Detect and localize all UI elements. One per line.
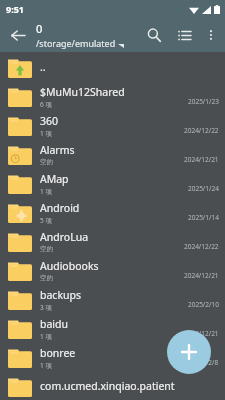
staticText: 空的 [40,245,53,253]
staticText: com.ucmed.xinqiao.patient [40,379,175,393]
button[interactable]: Search [139,18,169,52]
button[interactable]: 0 [36,21,139,49]
staticText: 2024/12/22 [184,126,219,135]
button[interactable]: $MuMu12Shared [0,82,225,111]
staticText: 3 项 [40,303,52,312]
staticText: AMap [40,172,69,186]
button[interactable]: 360 [0,111,225,140]
staticText: 1 项 [40,129,52,138]
staticText: Alarms [40,143,75,157]
staticText: 1 项 [40,361,52,370]
staticText: Android [40,201,80,215]
staticText: 空的 [40,158,53,166]
button[interactable]: AndroLua [0,227,225,256]
staticText: 2024/12/22 [184,242,219,251]
button[interactable]: Audiobooks [0,256,225,285]
staticText: 6 项 [40,100,52,109]
staticText: bonree [40,346,76,360]
button[interactable]: backups [0,285,225,314]
staticText: 2025/1/24 [188,184,219,193]
staticText: 2025/2/8 [191,358,219,367]
staticText: 5 项 [40,216,52,225]
staticText: 360 [40,114,59,128]
staticText: 2024/12/21 [184,271,219,280]
staticText: .. [40,60,46,74]
staticText: Audiobooks [40,259,99,273]
staticText: AndroLua [40,230,89,244]
staticText: 9:51 [6,3,24,15]
button[interactable]: Android [0,198,225,227]
staticText: backups [40,288,81,302]
staticText: baidu [40,317,69,331]
staticText: /storage/emulated [36,37,116,49]
staticText: $MuMu12Shared [40,85,125,99]
button[interactable]: .. [0,52,225,82]
staticText: 空的 [40,274,53,282]
button[interactable]: baidu [0,314,225,343]
staticText: 1 项 [40,187,52,196]
button[interactable]: bonree [0,343,225,372]
staticText: 2025/1/14 [188,213,219,222]
staticText: 2025/1/23 [188,97,219,106]
button[interactable]: Add [167,330,211,374]
staticText: 2025/2/10 [188,300,219,309]
staticText: 2024/12/21 [184,329,219,338]
button[interactable]: Back [0,18,34,52]
button[interactable]: AMap [0,169,225,198]
button[interactable]: More options [199,18,223,52]
button[interactable]: View mode [169,18,199,52]
staticText: 0 [36,21,43,36]
button[interactable]: com.ucmed.xinqiao.patient [0,372,225,400]
staticText: 2024/12/21 [184,155,219,164]
button[interactable]: Alarms [0,140,225,169]
staticText: 1 项 [40,332,52,341]
